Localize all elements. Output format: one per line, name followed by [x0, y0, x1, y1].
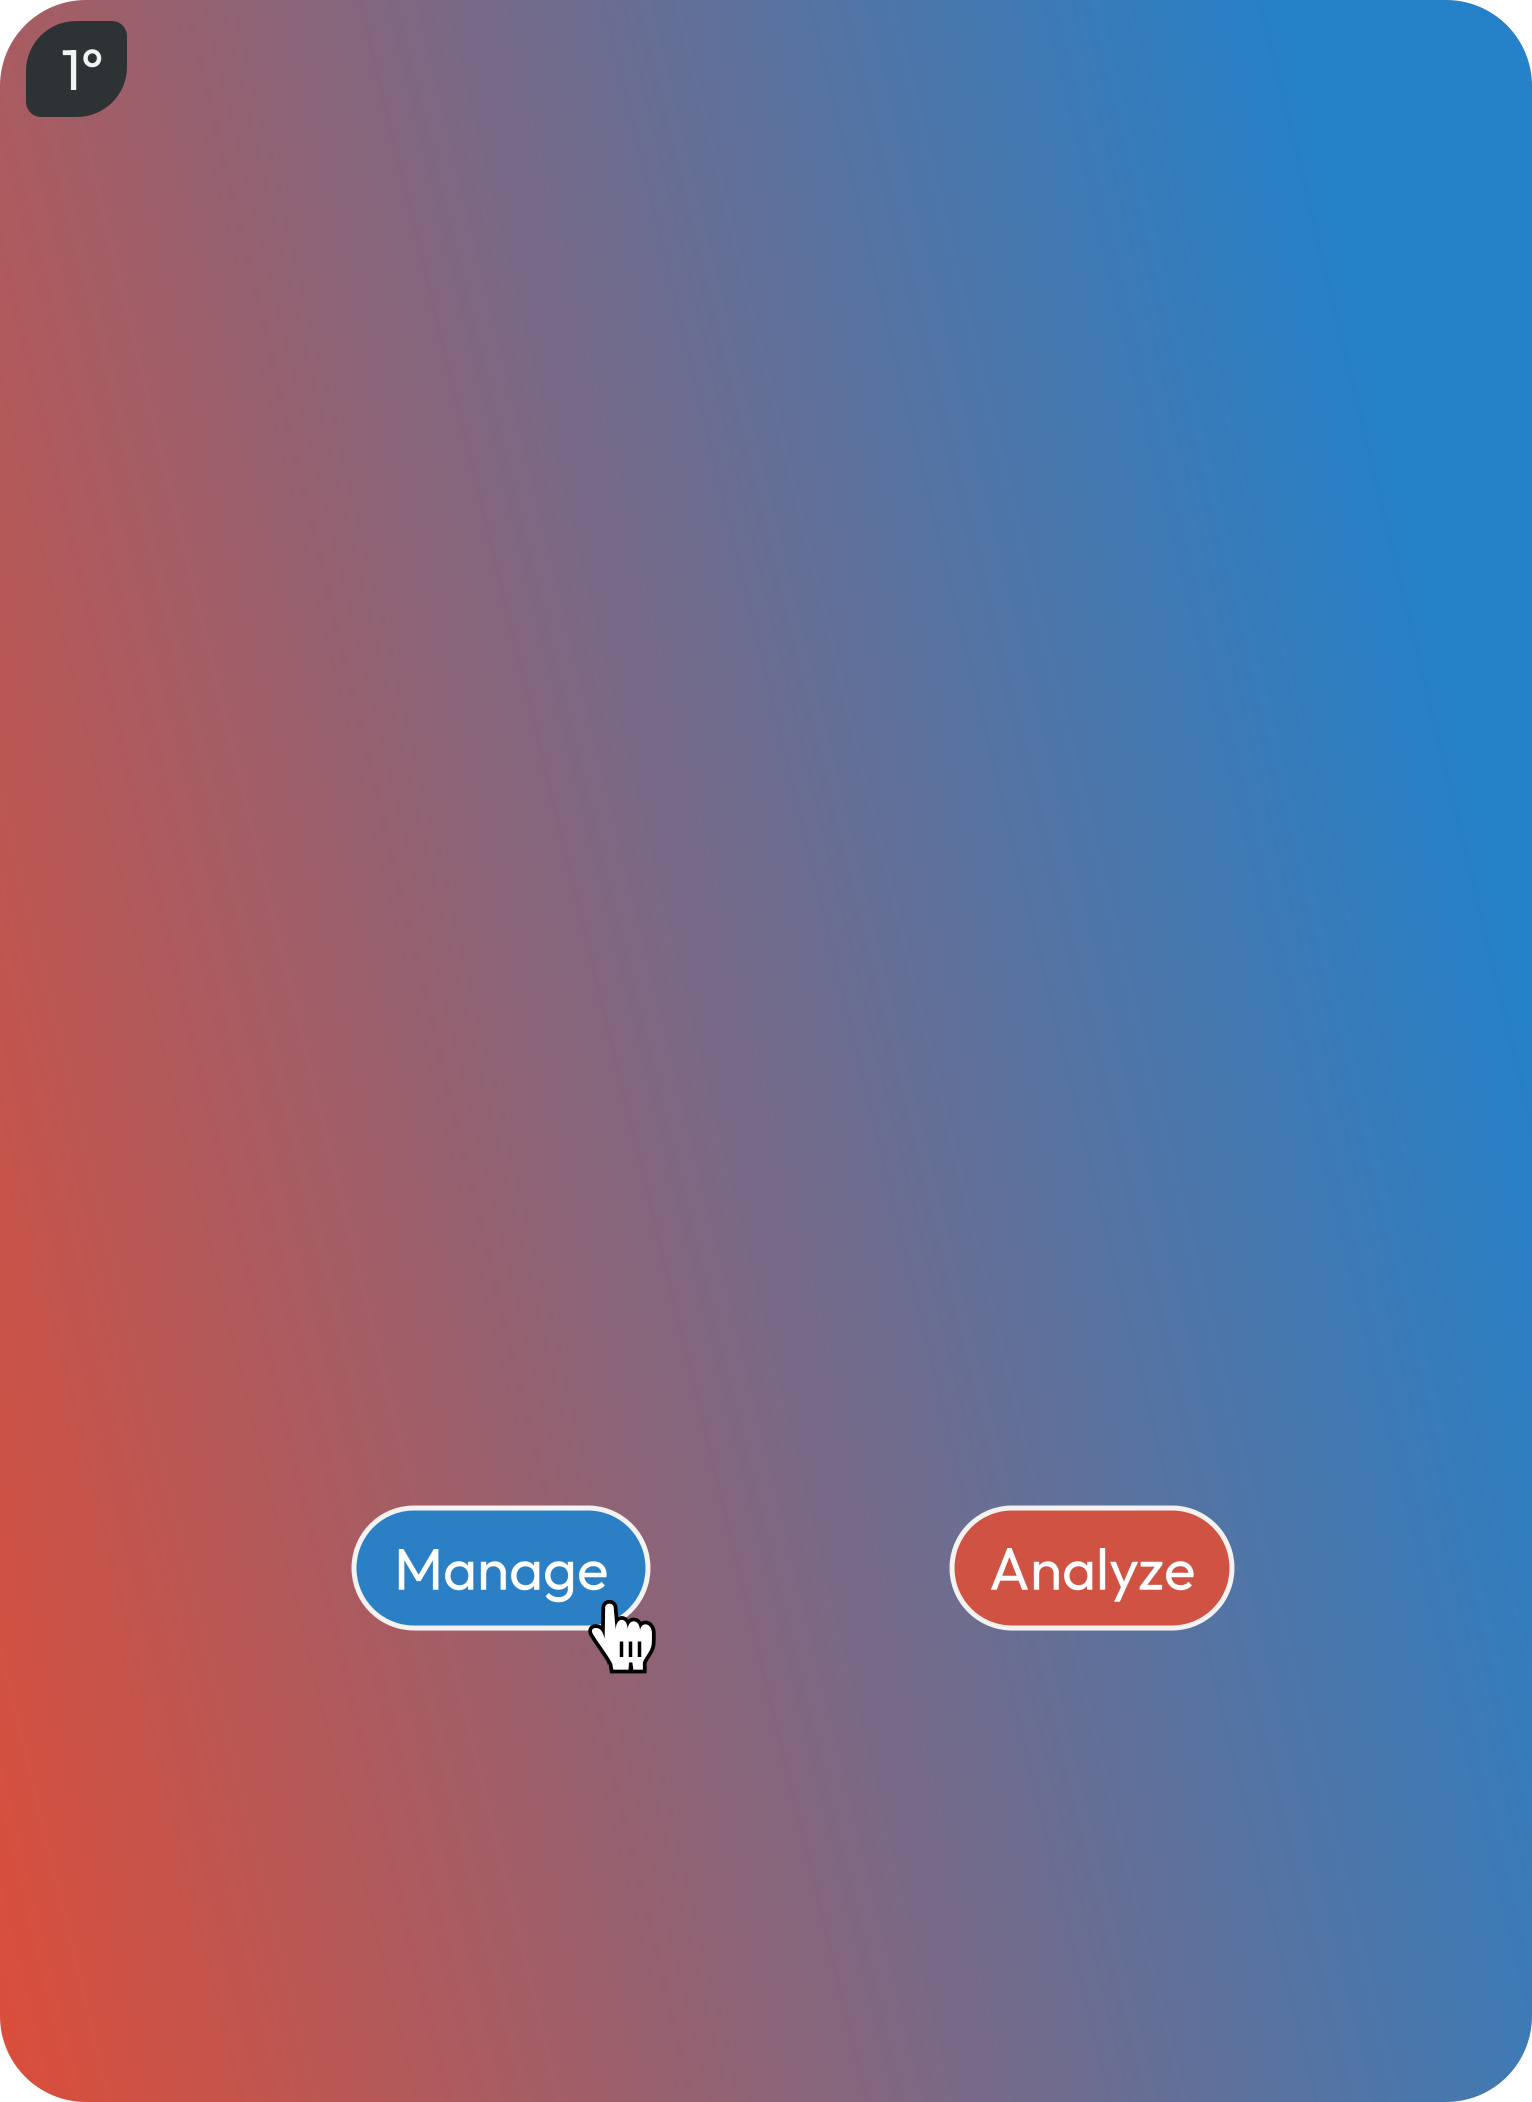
staticText: Analyze	[989, 1531, 1195, 1605]
button[interactable]: Manage	[354, 1508, 648, 1628]
staticText: Manage	[394, 1531, 608, 1605]
button[interactable]: Temperature, 1 degree	[26, 21, 127, 117]
staticText: 1°	[61, 33, 104, 105]
button[interactable]: Analyze	[952, 1508, 1232, 1628]
